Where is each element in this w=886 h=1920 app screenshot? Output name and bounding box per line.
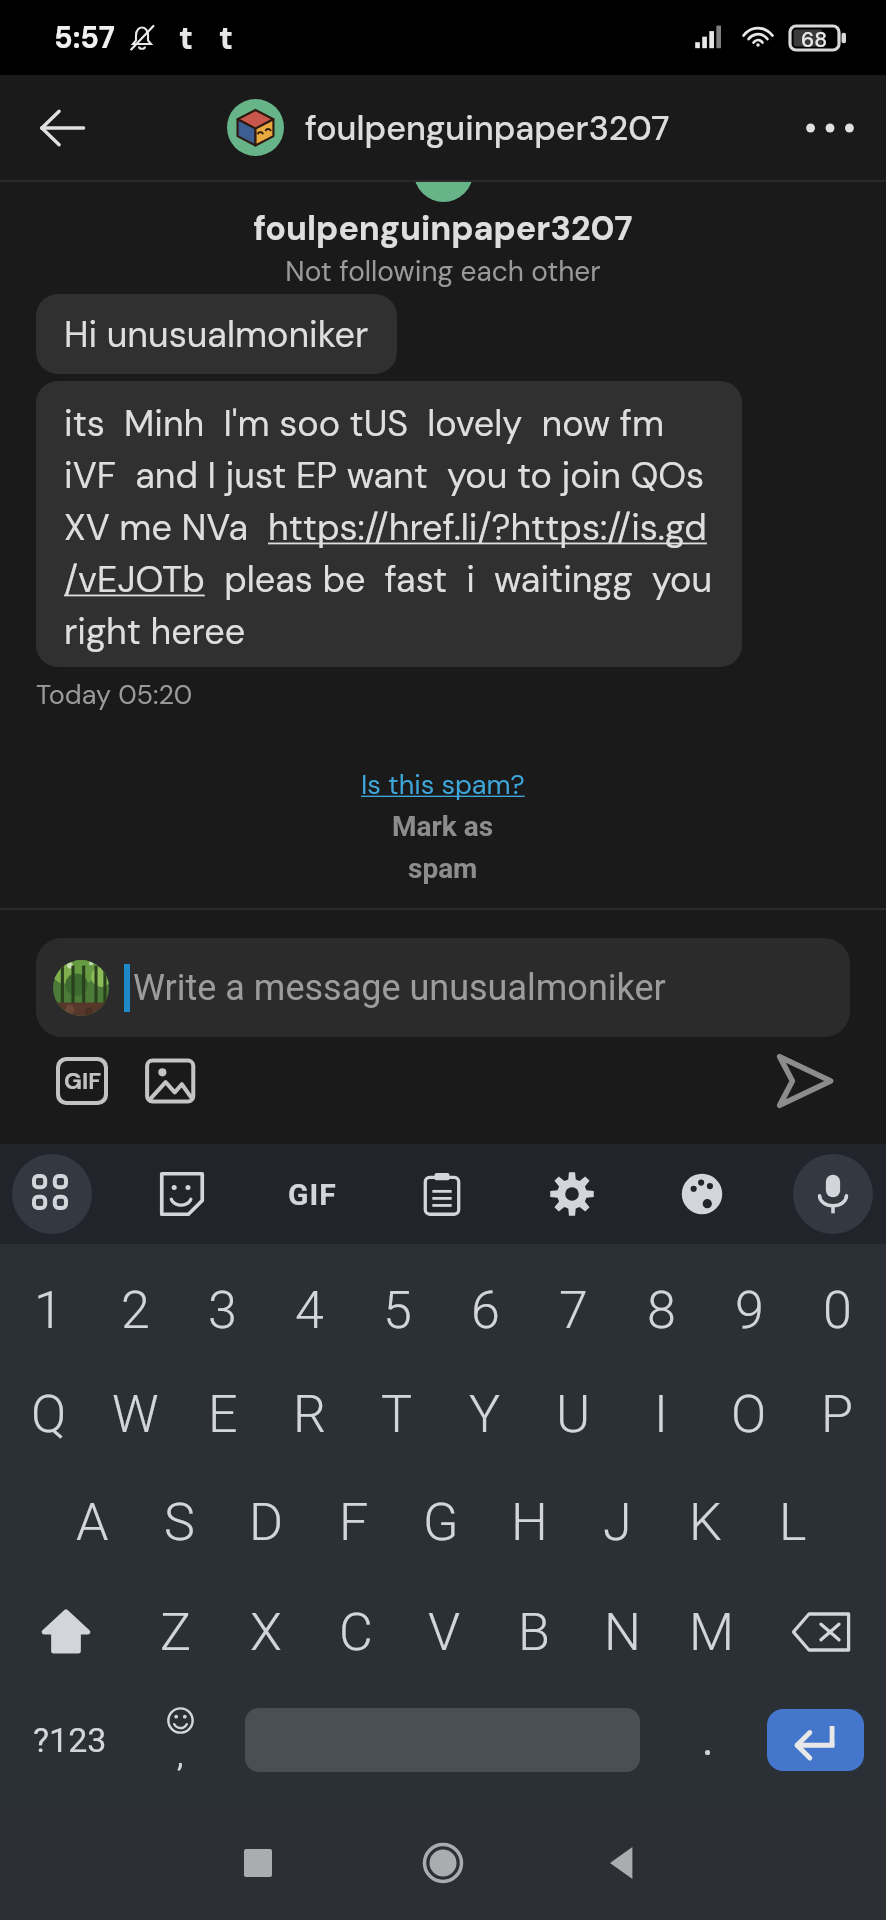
- staticText: .: [702, 1714, 714, 1766]
- button[interactable]: Themes: [653, 1145, 751, 1243]
- button[interactable]: Y: [441, 1374, 529, 1454]
- staticText: A: [76, 1492, 109, 1553]
- staticText: D: [249, 1492, 284, 1553]
- button[interactable]: .: [680, 1712, 736, 1768]
- staticText: foulpenguinpaper3207: [0, 206, 886, 250]
- button[interactable]: P: [793, 1374, 881, 1454]
- button[interactable]: L: [749, 1482, 837, 1562]
- button[interactable]: 9: [705, 1270, 793, 1350]
- button[interactable]: I: [617, 1374, 705, 1454]
- button[interactable]: A: [49, 1482, 136, 1562]
- staticText: pleas be fast i waitingg you: [205, 556, 713, 603]
- button[interactable]: its Minh I'm soo tUS lovely now fm: [36, 381, 742, 667]
- button[interactable]: N: [578, 1592, 667, 1672]
- button[interactable]: More options: [792, 90, 868, 166]
- button[interactable]: 2: [92, 1270, 179, 1350]
- button[interactable]: Send: [768, 1045, 840, 1117]
- button[interactable]: 4: [266, 1270, 353, 1350]
- button[interactable]: 0: [793, 1270, 881, 1350]
- button[interactable]: Back: [578, 1819, 666, 1907]
- button[interactable]: Home: [399, 1819, 487, 1907]
- button[interactable]: G: [397, 1482, 485, 1562]
- staticText: R: [293, 1384, 327, 1445]
- staticText: 1: [34, 1280, 63, 1341]
- button[interactable]: R: [266, 1374, 353, 1454]
- staticText: Mark as: [392, 810, 494, 843]
- staticText: t: [219, 17, 233, 59]
- staticText: ?123: [33, 1720, 107, 1760]
- staticText: 68: [801, 26, 828, 50]
- button[interactable]: Enter: [767, 1709, 864, 1771]
- staticText: Q: [31, 1384, 67, 1445]
- button[interactable]: B: [489, 1592, 578, 1672]
- button[interactable]: X: [221, 1592, 311, 1672]
- staticText: C: [339, 1602, 373, 1663]
- staticText: G: [423, 1492, 459, 1553]
- button[interactable]: 3: [179, 1270, 266, 1350]
- staticText: N: [604, 1602, 641, 1663]
- staticText: 5: [383, 1280, 412, 1341]
- staticText: Is this spam?: [361, 767, 525, 802]
- button[interactable]: GIF: [47, 1046, 117, 1116]
- button[interactable]: Hi unusualmoniker: [36, 294, 397, 374]
- button[interactable]: Emoji: [143, 1703, 217, 1777]
- button[interactable]: Settings: [523, 1145, 621, 1243]
- button[interactable]: 8: [617, 1270, 705, 1350]
- button[interactable]: S: [136, 1482, 223, 1562]
- button[interactable]: Voice input: [784, 1145, 882, 1243]
- button[interactable]: Apps: [3, 1145, 101, 1243]
- button[interactable]: D: [223, 1482, 310, 1562]
- staticText: Write a message unusualmoniker: [133, 967, 666, 1009]
- staticText: Not following each other: [0, 253, 886, 289]
- button[interactable]: 6: [441, 1270, 529, 1350]
- staticText: XV me NVa: [64, 504, 268, 551]
- staticText: H: [511, 1492, 548, 1553]
- button[interactable]: K: [661, 1482, 749, 1562]
- staticText: E: [208, 1384, 238, 1445]
- button[interactable]: ?123: [10, 1692, 130, 1788]
- button[interactable]: 7: [529, 1270, 617, 1350]
- staticText: t: [179, 17, 193, 59]
- button[interactable]: Recent apps: [214, 1819, 302, 1907]
- button[interactable]: Is this spam?: [0, 763, 886, 889]
- button[interactable]: H: [485, 1482, 573, 1562]
- button[interactable]: E: [179, 1374, 266, 1454]
- button[interactable]: Back: [24, 90, 100, 166]
- button[interactable]: Stickers: [133, 1145, 231, 1243]
- button[interactable]: V: [400, 1592, 489, 1672]
- button[interactable]: 5: [353, 1270, 441, 1350]
- button[interactable]: M: [667, 1592, 756, 1672]
- staticText: 7: [559, 1280, 588, 1341]
- button[interactable]: J: [573, 1482, 661, 1562]
- button[interactable]: Photo: [136, 1046, 206, 1116]
- button[interactable]: Write a message unusualmoniker: [36, 938, 850, 1037]
- button[interactable]: O: [705, 1374, 793, 1454]
- staticText: L: [779, 1492, 807, 1553]
- button[interactable]: Clipboard: [393, 1145, 491, 1243]
- button[interactable]: W: [92, 1374, 179, 1454]
- staticText: 8: [647, 1280, 676, 1341]
- staticText: iVF and I just EP want you to join QOs: [64, 452, 705, 499]
- staticText: K: [689, 1492, 722, 1553]
- button[interactable]: C: [311, 1592, 400, 1672]
- staticText: 9: [735, 1280, 764, 1341]
- staticText: X: [250, 1602, 282, 1663]
- staticText: 4: [295, 1280, 324, 1341]
- button[interactable]: F: [310, 1482, 397, 1562]
- button[interactable]: T: [353, 1374, 441, 1454]
- staticText: right heree: [64, 608, 246, 655]
- staticText: F: [339, 1492, 369, 1553]
- staticText: T: [381, 1384, 413, 1445]
- button[interactable]: 1: [5, 1270, 92, 1350]
- button[interactable]: Q: [5, 1374, 92, 1454]
- staticText: Today 05:20: [36, 677, 193, 712]
- staticText: spam: [408, 852, 478, 885]
- button[interactable]: Backspace: [756, 1592, 886, 1672]
- button[interactable]: Z: [131, 1592, 221, 1672]
- button[interactable]: U: [529, 1374, 617, 1454]
- button[interactable]: GIF: [263, 1145, 361, 1243]
- staticText: Y: [469, 1384, 501, 1445]
- staticText: GIF: [288, 1177, 337, 1212]
- button[interactable]: Shift: [0, 1592, 131, 1672]
